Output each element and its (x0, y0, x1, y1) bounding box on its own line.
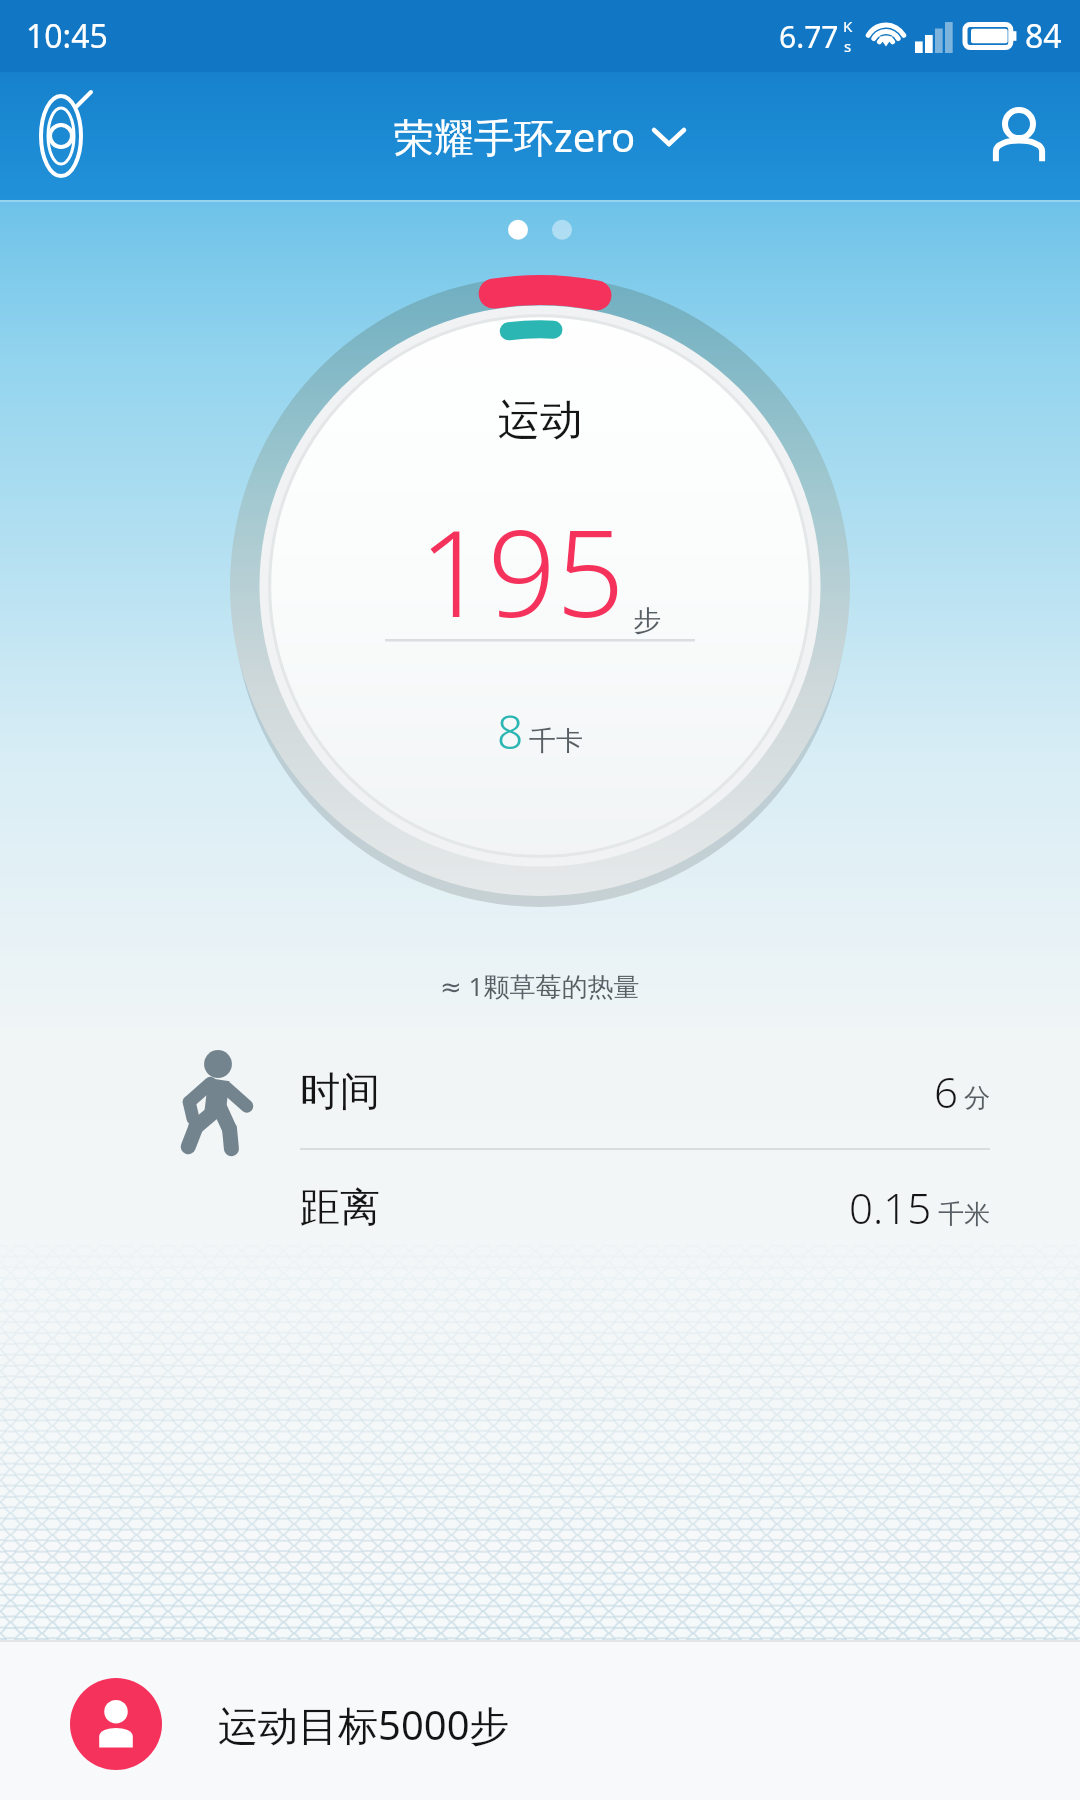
staticText: 时间 (300, 1066, 380, 1116)
staticText: 运动目标5000步 (218, 1697, 510, 1752)
staticText: 千卡 (529, 724, 583, 758)
staticText: 10:45 (26, 14, 108, 58)
staticText: 千米 (938, 1198, 990, 1231)
button[interactable]: 运动目标5000步 (0, 1640, 1080, 1800)
staticText: K (843, 16, 853, 36)
button[interactable]: Band (18, 93, 104, 179)
staticText: 0.15 (849, 1179, 932, 1236)
staticText: 195 (419, 489, 625, 652)
staticText: s (844, 36, 852, 56)
staticText: 84 (1025, 14, 1062, 58)
staticText: 分 (964, 1082, 990, 1115)
button[interactable]: 时间 (300, 1034, 990, 1148)
staticText: 荣耀手环zero (394, 109, 636, 164)
staticText: 运动 (498, 394, 582, 447)
staticText: 步 (633, 603, 661, 638)
staticText: ≈ 1颗草莓的热量 (440, 968, 640, 1004)
staticText: 距离 (300, 1182, 380, 1232)
button[interactable]: Account (984, 101, 1054, 171)
staticText: 6.77 (779, 16, 839, 57)
button[interactable]: 荣耀手环zero (394, 109, 686, 164)
staticText: 6 (934, 1063, 958, 1120)
staticText: 8 (497, 700, 524, 763)
button[interactable]: 距离 (300, 1150, 990, 1264)
